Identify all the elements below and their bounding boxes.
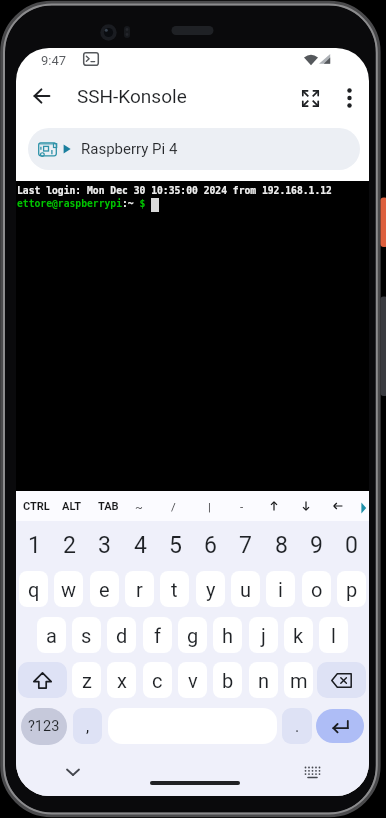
staticText: x <box>117 669 127 692</box>
staticText: 7 <box>239 532 252 559</box>
staticText: 9 <box>310 532 323 559</box>
staticText: g <box>187 624 199 647</box>
staticText: ?123 <box>28 718 60 735</box>
button[interactable]: 7 <box>228 523 262 567</box>
button[interactable]: ?123 <box>21 708 67 745</box>
button[interactable]: e <box>90 571 119 607</box>
button[interactable]: v <box>178 662 207 698</box>
staticText: f <box>154 624 161 647</box>
staticText: Last login: Mon Dec 30 10:35:00 2024 fro… <box>17 185 332 196</box>
button[interactable]: p <box>337 571 366 607</box>
staticText: i <box>278 578 283 601</box>
button[interactable]: n <box>249 662 278 698</box>
staticText: 0 <box>345 532 358 559</box>
button[interactable]: 6 <box>193 523 227 567</box>
staticText: s <box>81 624 92 647</box>
button[interactable]: u <box>231 571 260 607</box>
staticText: 3 <box>98 532 111 559</box>
button[interactable] <box>57 758 89 786</box>
button[interactable]: 8 <box>264 523 298 567</box>
button[interactable]: ~ <box>124 491 154 521</box>
button[interactable]: s <box>72 617 101 653</box>
button[interactable]: g <box>178 617 207 653</box>
staticText: a <box>46 624 57 647</box>
button[interactable] <box>24 78 60 114</box>
button[interactable]: . <box>282 708 312 744</box>
button[interactable] <box>317 662 366 698</box>
staticText: j <box>261 624 266 647</box>
button[interactable]: f <box>143 617 172 653</box>
button[interactable]: j <box>249 617 278 653</box>
button[interactable]: i <box>266 571 295 607</box>
button[interactable]: 3 <box>87 523 121 567</box>
button[interactable]: w <box>54 571 83 607</box>
button[interactable]: 0 <box>334 523 368 567</box>
button[interactable]: b <box>213 662 242 698</box>
staticText: d <box>116 624 128 647</box>
button[interactable] <box>332 80 366 116</box>
button[interactable] <box>292 492 320 520</box>
button[interactable]: y <box>196 571 225 607</box>
button[interactable]: c <box>143 662 172 698</box>
staticText: 2 <box>63 532 76 559</box>
staticText: 1 <box>28 532 41 559</box>
staticText: 5 <box>169 532 182 559</box>
button[interactable]: CTRL <box>21 491 51 521</box>
button[interactable]: a <box>37 617 66 653</box>
button[interactable]: z <box>72 662 101 698</box>
staticText: ettore@raspberrypi:~ $ <box>17 198 146 209</box>
button[interactable] <box>292 80 328 116</box>
staticText: w <box>61 578 77 601</box>
button[interactable]: / <box>158 491 188 521</box>
button[interactable]: 2 <box>52 523 86 567</box>
staticText: ALT <box>62 500 82 513</box>
staticText: , <box>86 717 90 736</box>
button[interactable] <box>260 492 288 520</box>
button[interactable]: t <box>160 571 189 607</box>
staticText: z <box>82 669 92 692</box>
button[interactable]: r <box>125 571 154 607</box>
staticText: 4 <box>134 532 147 559</box>
staticText: 8 <box>275 532 288 559</box>
staticText: y <box>206 578 216 601</box>
button[interactable]: o <box>302 571 331 607</box>
button[interactable]: l <box>319 617 348 653</box>
button[interactable]: m <box>284 662 313 698</box>
staticText: - <box>240 500 244 513</box>
button[interactable]: , <box>73 708 102 744</box>
button[interactable]: d <box>107 617 136 653</box>
button[interactable]: ALT <box>57 491 87 521</box>
button[interactable]: 1 <box>17 523 51 567</box>
staticText: 6 <box>204 532 217 559</box>
button[interactable]: | <box>194 491 224 521</box>
button[interactable]: 5 <box>158 523 192 567</box>
button[interactable] <box>18 662 67 698</box>
staticText: r <box>136 578 143 601</box>
staticText: . <box>295 717 300 736</box>
button[interactable] <box>296 758 328 786</box>
staticText: n <box>258 669 270 692</box>
staticText: SSH-Konsole <box>77 85 187 107</box>
button[interactable]: h <box>213 617 242 653</box>
button[interactable]: k <box>284 617 313 653</box>
button[interactable] <box>316 709 364 743</box>
staticText: TAB <box>98 500 119 513</box>
button[interactable]: TAB <box>93 491 123 521</box>
staticText: v <box>188 669 198 692</box>
staticText: m <box>290 669 308 692</box>
staticText: b <box>222 669 234 692</box>
staticText: c <box>152 669 163 692</box>
button[interactable] <box>324 492 352 520</box>
button[interactable]: 9 <box>299 523 333 567</box>
staticText: e <box>99 578 110 601</box>
button[interactable]: x <box>107 662 136 698</box>
button[interactable]: - <box>227 491 257 521</box>
button[interactable]: 4 <box>123 523 157 567</box>
staticText: p <box>346 578 358 601</box>
staticText: u <box>240 578 252 601</box>
staticText: / <box>171 500 176 513</box>
button[interactable]: Raspberry Pi 4 <box>28 128 360 170</box>
staticText: CTRL <box>23 500 50 513</box>
button[interactable]: q <box>19 571 48 607</box>
